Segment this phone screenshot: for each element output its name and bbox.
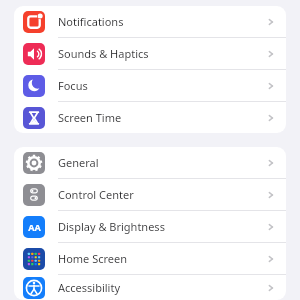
button[interactable]: Notifications (14, 6, 286, 37)
staticText: Control Center (58, 187, 266, 202)
staticText: AA (28, 221, 41, 233)
staticText: Notifications (58, 14, 266, 29)
button[interactable]: AA (14, 211, 286, 242)
staticText: General (58, 155, 266, 170)
button[interactable]: General (14, 147, 286, 178)
button[interactable]: Control Center (14, 179, 286, 210)
button[interactable]: Screen Time (14, 102, 286, 133)
button[interactable]: Focus (14, 70, 286, 101)
staticText: Display & Brightness (58, 219, 266, 234)
button[interactable]: Sounds & Haptics (14, 38, 286, 69)
staticText: Home Screen (58, 251, 266, 266)
button[interactable]: Accessibility (14, 275, 286, 300)
staticText: Focus (58, 78, 266, 93)
staticText: Sounds & Haptics (58, 46, 266, 61)
staticText: Screen Time (58, 110, 266, 125)
staticText: Accessibility (58, 280, 266, 295)
button[interactable]: Home Screen (14, 243, 286, 274)
